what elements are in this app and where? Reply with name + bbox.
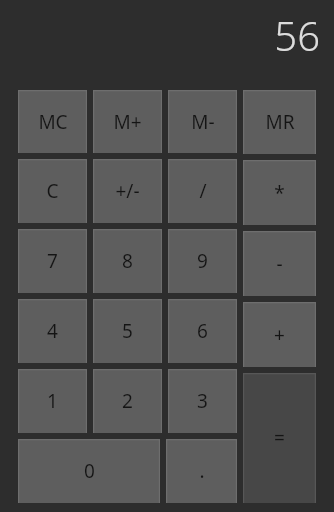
staticText: 3	[197, 388, 208, 414]
button[interactable]: .	[166, 439, 237, 503]
button[interactable]: =	[243, 373, 316, 503]
button[interactable]: 6	[168, 299, 237, 363]
staticText: MR	[265, 109, 295, 135]
button[interactable]: 3	[168, 369, 237, 433]
staticText: 9	[197, 248, 208, 274]
button[interactable]: +	[243, 302, 316, 367]
staticText: 8	[122, 248, 133, 274]
button[interactable]: 7	[18, 229, 87, 293]
button[interactable]: *	[243, 160, 316, 225]
staticText: 2	[122, 388, 133, 414]
staticText: =	[274, 425, 285, 451]
staticText: 7	[47, 248, 58, 274]
staticText: *	[274, 180, 285, 206]
staticText: M+	[113, 109, 142, 135]
staticText: 1	[47, 388, 58, 414]
button[interactable]: MR	[243, 90, 316, 154]
staticText: 56	[274, 8, 320, 62]
button[interactable]: 9	[168, 229, 237, 293]
staticText: -	[276, 251, 283, 277]
button[interactable]: C	[18, 159, 87, 223]
button[interactable]: 5	[93, 299, 162, 363]
button[interactable]: 8	[93, 229, 162, 293]
staticText: 0	[84, 458, 95, 484]
button[interactable]: M-	[168, 90, 237, 153]
button[interactable]: 0	[18, 439, 160, 503]
button[interactable]: MC	[18, 90, 87, 153]
button[interactable]: +/-	[93, 159, 162, 223]
staticText: MC	[38, 109, 68, 135]
staticText: +	[274, 322, 285, 348]
staticText: +/-	[115, 178, 140, 204]
button[interactable]: -	[243, 231, 316, 296]
staticText: C	[46, 178, 59, 204]
staticText: 4	[47, 318, 58, 344]
button[interactable]: M+	[93, 90, 162, 153]
button[interactable]: 1	[18, 369, 87, 433]
staticText: 6	[197, 318, 208, 344]
button[interactable]: 4	[18, 299, 87, 363]
staticText: /	[199, 178, 207, 204]
staticText: 5	[122, 318, 133, 344]
staticText: M-	[191, 109, 215, 135]
button[interactable]: /	[168, 159, 237, 223]
button[interactable]: 2	[93, 369, 162, 433]
staticText: .	[199, 458, 205, 484]
